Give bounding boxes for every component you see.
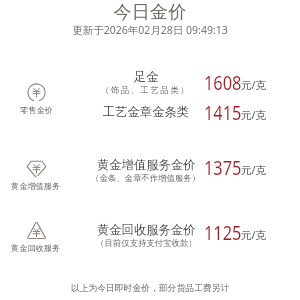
staticText: 元/克 [241, 163, 267, 177]
staticText: 1125 [204, 219, 242, 246]
staticText: 以上为今日即时金价，部分货品工费另计 [0, 283, 300, 294]
staticText: 元/克 [241, 228, 267, 242]
staticText: 工艺金章金条类 [103, 104, 190, 119]
staticText: 黄金增值服务金价 [97, 157, 196, 172]
button[interactable]: 黄金回收服务 [0, 221, 76, 253]
button[interactable]: 零售金价 [0, 83, 76, 115]
button[interactable]: 1375 [204, 154, 275, 181]
button[interactable]: 1125 [204, 219, 275, 246]
staticText: 零售金价 [20, 105, 53, 115]
staticText: （金条、金章不作增值服务） [91, 173, 201, 184]
staticText: 1375 [204, 154, 242, 181]
button[interactable]: 足金 [81, 69, 211, 96]
staticText: 元/克 [241, 108, 267, 122]
staticText: 足金 [134, 69, 159, 84]
staticText: 黄金回收服务 [11, 243, 61, 253]
button[interactable]: 黄金增值服务金价 [81, 157, 211, 184]
button[interactable]: 工艺金章金条类 [81, 104, 211, 119]
button[interactable]: 1415 [204, 99, 275, 126]
staticText: 今日金价 [0, 1, 300, 24]
staticText: 更新于2026年02月28日 09:49:13 [0, 23, 300, 37]
button[interactable]: 黄金回收服务金价 [81, 222, 211, 249]
button[interactable]: 1608 [204, 69, 275, 96]
staticText: 黄金回收服务金价 [97, 222, 196, 237]
staticText: 1415 [204, 99, 242, 126]
staticText: （饰品、工艺品类） [101, 85, 191, 96]
staticText: 黄金增值服务 [11, 181, 61, 191]
staticText: 1608 [204, 69, 242, 96]
staticText: 元/克 [241, 78, 267, 92]
staticText: （目前仅支持支付宝收款） [96, 238, 197, 249]
button[interactable]: 黄金增值服务 [0, 159, 76, 191]
